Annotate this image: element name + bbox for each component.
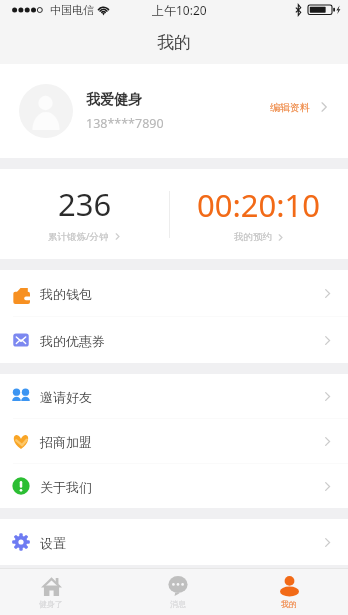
button[interactable]: 消息	[116, 569, 232, 615]
staticText: 招商加盟	[40, 434, 92, 450]
staticText: 我的钱包	[40, 286, 92, 302]
staticText: 00:20:10	[197, 184, 321, 226]
staticText: 我的	[281, 599, 297, 609]
button[interactable]: 邀请好友	[0, 374, 348, 418]
staticText: 邀请好友	[40, 389, 92, 405]
button[interactable]: 招商加盟	[0, 419, 348, 463]
button[interactable]: 编辑资料	[270, 100, 331, 114]
staticText: 累计锻炼/分钟	[48, 230, 109, 243]
staticText: 关于我们	[40, 479, 92, 495]
button[interactable]: 关于我们	[0, 464, 348, 508]
button[interactable]: 236	[0, 169, 169, 259]
staticText: 设置	[40, 535, 66, 551]
button[interactable]: 设置	[0, 519, 348, 565]
staticText: 我的预约	[234, 231, 272, 243]
staticText: 编辑资料	[270, 101, 310, 114]
staticText: 中国电信	[50, 3, 94, 17]
staticText: 消息	[170, 599, 186, 609]
staticText: 上午10:20	[152, 2, 207, 18]
button[interactable]: 我爱健身	[0, 64, 348, 158]
button[interactable]: 我的	[232, 569, 348, 615]
button[interactable]: 健身了	[0, 569, 116, 615]
staticText: 健身了	[39, 599, 63, 609]
button[interactable]: 00:20:10	[170, 169, 348, 259]
staticText: 138****7890	[86, 115, 164, 132]
staticText: 我的优惠券	[40, 333, 105, 349]
staticText: 236	[58, 183, 112, 225]
button[interactable]: 我的优惠券	[0, 317, 348, 363]
button[interactable]: 我的钱包	[0, 270, 348, 316]
staticText: 我爱健身	[86, 91, 142, 109]
staticText: 我的	[157, 32, 191, 53]
